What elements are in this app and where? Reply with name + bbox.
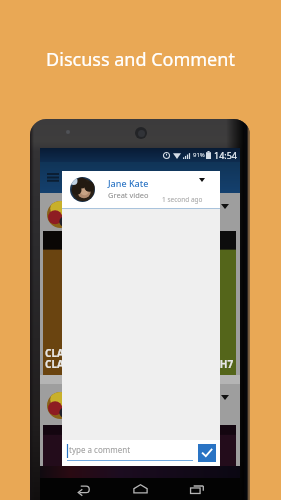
button[interactable]: Card options <box>40 384 240 425</box>
staticText: Great video <box>108 190 149 200</box>
button[interactable]: Send <box>198 444 216 462</box>
staticText: 1 second ago <box>162 195 203 204</box>
button[interactable]: More options <box>194 172 210 188</box>
button[interactable]: Home <box>126 478 154 500</box>
button[interactable]: Card options <box>218 395 232 409</box>
staticText: 14:54 <box>214 149 238 161</box>
staticText: GET FREE <box>45 471 69 496</box>
button[interactable]: Back <box>69 478 97 500</box>
staticText: 91% <box>193 151 205 159</box>
staticText: CLASH OF CLANS HA <box>45 346 95 371</box>
staticText: type a comment <box>69 444 131 455</box>
staticText: Discuss and Comment <box>46 47 235 72</box>
button[interactable]: Card options <box>218 204 232 218</box>
button[interactable]: Recent apps <box>183 478 211 500</box>
staticText: TH7 <box>214 357 234 371</box>
button[interactable]: type a comment <box>67 444 193 463</box>
button[interactable]: Navigation menu <box>46 171 62 184</box>
button[interactable]: Card options <box>40 193 240 231</box>
staticText: Jane Kate <box>108 177 149 189</box>
